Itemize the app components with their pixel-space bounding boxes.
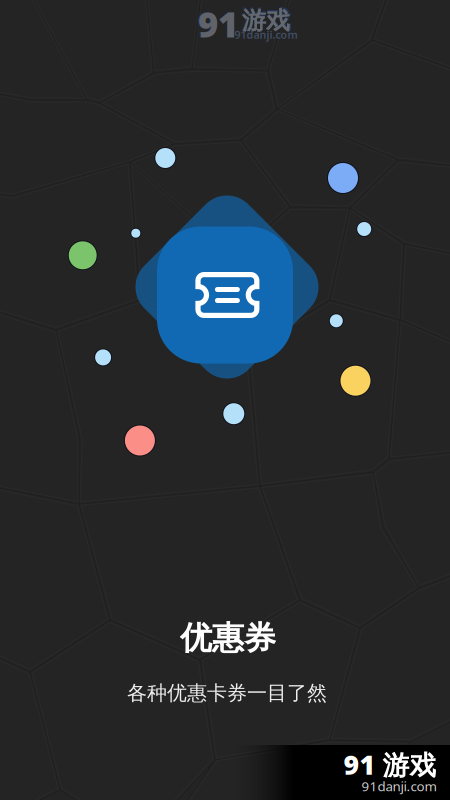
staticText: 游戏 [242, 6, 290, 36]
staticText: 各种优惠卡券一目了然 [127, 681, 327, 705]
staticText: 91danji.com [361, 777, 436, 795]
staticText: 91 游戏 [343, 747, 436, 782]
staticText: 91 [197, 0, 239, 47]
staticText: 游戏 [241, 4, 291, 36]
staticText: 91danji.com [234, 27, 297, 42]
staticText: 91 [198, 1, 238, 47]
staticText: 优惠券 [180, 618, 276, 658]
